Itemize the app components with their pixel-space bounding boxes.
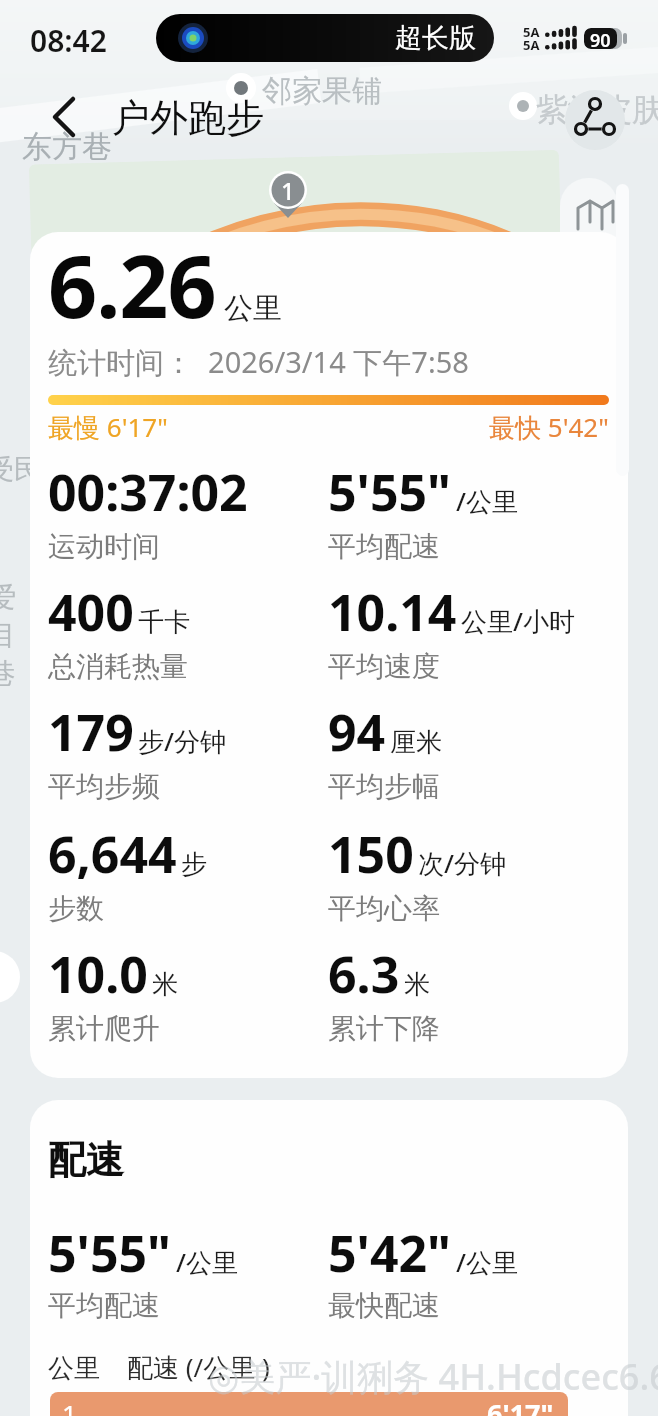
staticText: 5A	[523, 23, 540, 41]
staticText: 平均心率	[328, 891, 440, 926]
staticText: 179	[48, 698, 134, 766]
staticText: 运动时间	[48, 529, 160, 564]
staticText: 90	[590, 28, 611, 49]
staticText: 平均速度	[328, 649, 440, 684]
staticText: 平均配速	[48, 1288, 160, 1323]
staticText: ◎美严·训猁务 4H.Hcdcec6.6	[208, 1352, 658, 1401]
staticText: 平均步幅	[328, 769, 440, 804]
staticText: /公里	[176, 1244, 239, 1280]
staticText: 6.26	[48, 232, 216, 343]
staticText: 累计爬升	[48, 1011, 160, 1046]
staticText: 千卡	[138, 606, 190, 639]
staticText: 公里 配速 (/公里 )	[48, 1349, 270, 1385]
staticText: 1	[281, 174, 295, 207]
staticText: 邻家果铺	[262, 72, 382, 110]
staticText: 6'17"	[487, 1395, 554, 1416]
staticText: 东方巷	[22, 128, 112, 166]
staticText: 爱 目 巷	[0, 580, 16, 692]
staticText: 最快 5'42"	[489, 409, 609, 445]
staticText: 08:42	[30, 20, 107, 61]
button[interactable]: 配速	[30, 1100, 628, 1416]
staticText: 户外跑步	[112, 94, 264, 142]
staticText: 米	[152, 968, 178, 1001]
staticText: /公里	[456, 483, 519, 519]
staticText: 步	[181, 848, 207, 881]
staticText: 6,644	[48, 820, 177, 888]
button[interactable]: 6.26	[30, 232, 628, 1078]
button[interactable]	[560, 178, 618, 248]
staticText: 总消耗热量	[48, 649, 188, 684]
staticText: /公里	[456, 1244, 519, 1280]
staticText: 累计下降	[328, 1011, 440, 1046]
staticText: 统计时间： 2026/3/14 下午7:58	[48, 342, 469, 382]
staticText: 6.3	[328, 940, 400, 1008]
staticText: 次/分钟	[418, 845, 507, 881]
staticText: 00:37:02	[48, 458, 248, 526]
button[interactable]	[565, 90, 625, 150]
staticText: 最慢 6'17"	[48, 409, 168, 445]
staticText: 最快配速	[328, 1288, 440, 1323]
staticText: 公里/小时	[461, 603, 576, 639]
staticText: 平均配速	[328, 529, 440, 564]
staticText: 米	[404, 968, 430, 1001]
staticText: 紫汐皮肤	[536, 90, 658, 130]
staticText: 公里	[224, 290, 282, 327]
staticText: 150	[328, 820, 414, 888]
staticText: 1	[62, 1396, 77, 1416]
staticText: 10.0	[48, 940, 148, 1008]
staticText: 步数	[48, 891, 104, 926]
staticText: 步/分钟	[138, 723, 227, 759]
staticText: 平均步频	[48, 769, 160, 804]
button[interactable]	[40, 94, 88, 142]
staticText: 5'55"	[328, 458, 452, 526]
staticText: 受民	[0, 452, 42, 487]
staticText: 10.14	[328, 578, 457, 646]
staticText: 5A	[523, 36, 540, 54]
staticText: 厘米	[390, 726, 442, 759]
staticText: 5'42"	[328, 1219, 452, 1287]
staticText: 400	[48, 578, 134, 646]
staticText: 超长版	[395, 21, 476, 55]
staticText: 5'55"	[48, 1219, 172, 1287]
staticText: 配速	[48, 1136, 124, 1184]
staticText: 94	[328, 698, 386, 766]
